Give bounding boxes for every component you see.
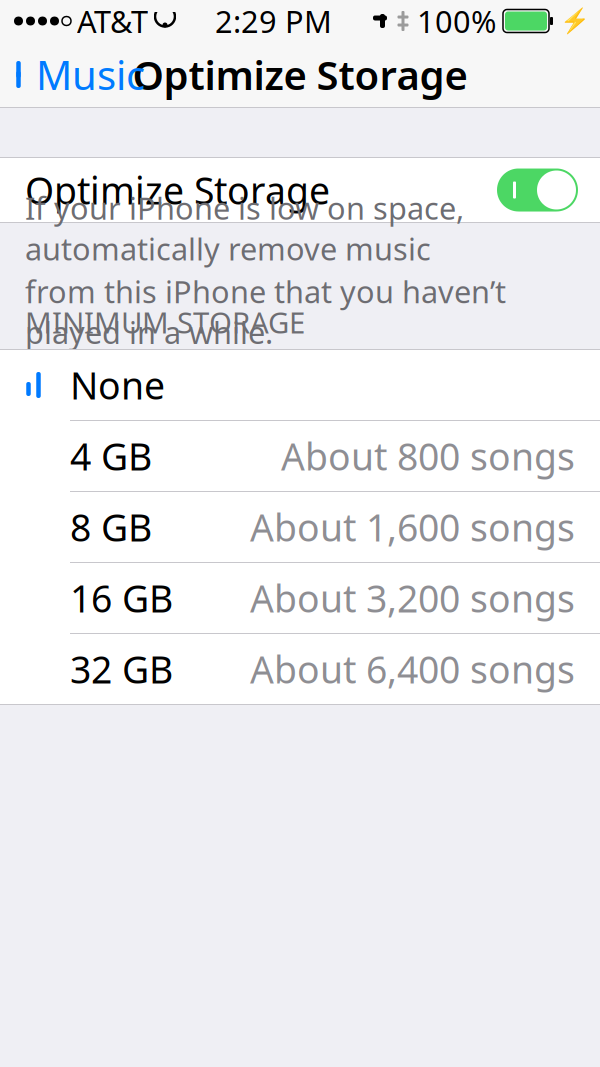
staticText: MINIMUM STORAGE — [25, 302, 305, 341]
button[interactable]: None — [0, 350, 600, 420]
button[interactable]: 4 GB — [0, 421, 600, 491]
staticText: 8 GB — [70, 502, 152, 552]
staticText: About 3,200 songs — [250, 573, 575, 623]
staticText: AT&T — [77, 1, 148, 41]
button[interactable]: Optimize Storage — [0, 158, 600, 222]
staticText: Optimize Storage — [25, 165, 330, 215]
button[interactable]: Music — [0, 40, 145, 109]
staticText: Music — [36, 48, 145, 101]
staticText: 2:29 PM — [215, 1, 332, 41]
staticText: None — [70, 360, 165, 410]
button[interactable]: 8 GB — [0, 492, 600, 562]
staticText: If your iPhone is low on space, automati… — [25, 188, 464, 269]
button[interactable]: 16 GB — [0, 563, 600, 633]
staticText: About 1,600 songs — [250, 502, 575, 552]
staticText: About 800 songs — [281, 431, 575, 481]
staticText: Optimize Storage — [132, 48, 467, 101]
staticText: 4 GB — [70, 431, 152, 481]
button[interactable]: 32 GB — [0, 634, 600, 704]
staticText: 32 GB — [70, 644, 173, 694]
staticText: 16 GB — [70, 573, 173, 623]
staticText: 100% — [417, 1, 496, 41]
staticText: ⚡ — [560, 7, 590, 35]
staticText: About 6,400 songs — [250, 644, 575, 694]
staticText: from this iPhone that you haven’t played… — [25, 271, 506, 352]
